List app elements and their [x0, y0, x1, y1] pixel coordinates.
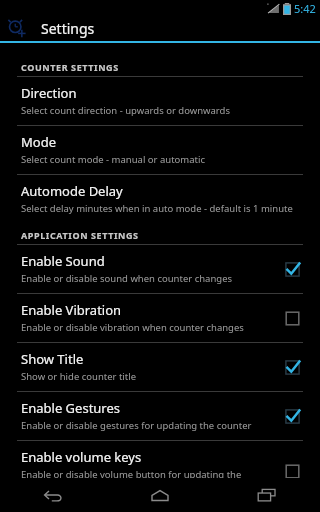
- button[interactable]: Back: [0, 478, 106, 512]
- staticText: Select count direction - upwards or down…: [21, 104, 230, 117]
- button[interactable]: Show Title: [0, 343, 320, 391]
- staticText: COUNTER SETTINGS: [21, 61, 119, 73]
- button[interactable]: Checked: [281, 405, 303, 427]
- button[interactable]: Enable Vibration: [0, 294, 320, 342]
- button[interactable]: Enable Gestures: [0, 392, 320, 440]
- staticText: Enable Vibration: [21, 301, 122, 319]
- staticText: Select count mode - manual or automatic: [21, 153, 205, 166]
- button[interactable]: Recent apps: [213, 478, 320, 512]
- staticText: Enable volume keys: [21, 448, 142, 466]
- other: App icon: [6, 18, 28, 40]
- button[interactable]: Enable Sound: [0, 245, 320, 293]
- button[interactable]: Unchecked: [281, 460, 303, 482]
- staticText: Enable Sound: [21, 252, 105, 270]
- staticText: Enable Gestures: [21, 399, 121, 417]
- staticText: Select delay minutes when in auto mode -…: [21, 202, 293, 215]
- button[interactable]: Unchecked: [281, 307, 303, 329]
- staticText: Show or hide counter title: [21, 370, 137, 383]
- button[interactable]: Automode Delay: [0, 175, 320, 223]
- button[interactable]: Home: [106, 478, 213, 512]
- button[interactable]: App icon: [0, 16, 320, 41]
- staticText: Enable or disable volume button for upda…: [21, 468, 273, 494]
- button[interactable]: Enable volume keys: [0, 441, 320, 502]
- staticText: Enable or disable vibration when counter…: [21, 321, 244, 334]
- button[interactable]: Mode: [0, 126, 320, 174]
- staticText: Automode Delay: [21, 182, 123, 200]
- staticText: Mode: [21, 133, 56, 151]
- button[interactable]: Direction: [0, 77, 320, 125]
- staticText: 5:42: [294, 1, 316, 16]
- staticText: APPLICATION SETTINGS: [21, 229, 139, 241]
- staticText: Show Title: [21, 350, 84, 368]
- staticText: Enable or disable gestures for updating …: [21, 419, 252, 432]
- button[interactable]: Checked: [281, 258, 303, 280]
- staticText: Direction: [21, 84, 77, 102]
- staticText: Settings: [41, 19, 95, 38]
- button[interactable]: Checked: [281, 356, 303, 378]
- staticText: Enable or disable sound when counter cha…: [21, 272, 233, 285]
